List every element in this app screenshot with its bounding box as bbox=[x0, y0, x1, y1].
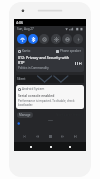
button[interactable]: Kanto bbox=[16, 47, 84, 72]
button[interactable]: Next bbox=[58, 132, 67, 141]
staticText: Politics in Commonality bbox=[18, 66, 49, 70]
staticText: Performance is impacted. To disable, che… bbox=[18, 99, 82, 107]
staticText: Sun, Aug 27 bbox=[17, 27, 34, 31]
button[interactable]: Quick setting bbox=[73, 34, 83, 44]
staticText: Silent bbox=[17, 77, 26, 81]
staticText: Manage bbox=[19, 113, 31, 117]
staticText: 4:06 bbox=[16, 20, 23, 25]
button[interactable]: Home bbox=[47, 143, 54, 150]
button[interactable]: Android System bbox=[16, 85, 84, 109]
button[interactable]: Quick setting bbox=[62, 34, 72, 44]
button[interactable]: Manage bbox=[17, 112, 33, 118]
staticText: Android System bbox=[22, 87, 45, 91]
staticText: Kanto bbox=[22, 49, 31, 53]
button[interactable]: Back bbox=[27, 143, 34, 150]
button[interactable]: Previous bbox=[33, 132, 42, 141]
button[interactable]: Quick setting bbox=[39, 34, 49, 44]
button[interactable]: Quick setting bbox=[17, 34, 27, 44]
staticText: Phone speaker bbox=[60, 49, 82, 53]
staticText: 012: Privacy and Security with RTP bbox=[18, 55, 73, 65]
button[interactable]: Shuffle bbox=[20, 132, 29, 141]
button[interactable]: Pause bbox=[74, 61, 78, 65]
staticText: Serial console enabled bbox=[18, 93, 55, 98]
button[interactable]: Quick setting bbox=[28, 34, 38, 44]
button[interactable]: Stop bbox=[46, 132, 55, 141]
button[interactable]: Next bbox=[78, 61, 82, 65]
button[interactable]: Skip to end bbox=[71, 132, 80, 141]
button[interactable]: Quick setting bbox=[51, 34, 61, 44]
button[interactable]: Recents bbox=[66, 143, 73, 150]
